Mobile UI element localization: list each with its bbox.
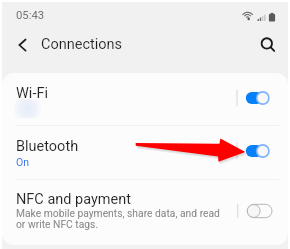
button[interactable]: Bluetooth <box>2 126 288 179</box>
button[interactable]: Connections <box>41 36 123 53</box>
staticText: 05:43 <box>16 9 45 22</box>
staticText: Make mobile payments, share data, and re… <box>16 207 220 231</box>
button[interactable]: Toggle, off <box>235 201 275 221</box>
button[interactable]: NFC and payment <box>2 180 288 245</box>
button[interactable]: Search <box>253 30 281 58</box>
button[interactable]: Toggle, on <box>235 88 275 108</box>
button[interactable]: Navigate back <box>10 30 38 58</box>
staticText: Bluetooth <box>16 138 79 155</box>
button[interactable]: Wi-Fi <box>2 73 288 125</box>
button[interactable]: Toggle, on <box>235 141 275 161</box>
staticText: Wi-Fi <box>16 85 48 102</box>
staticText: NFC and payment <box>16 191 132 208</box>
staticText: On <box>16 156 30 168</box>
